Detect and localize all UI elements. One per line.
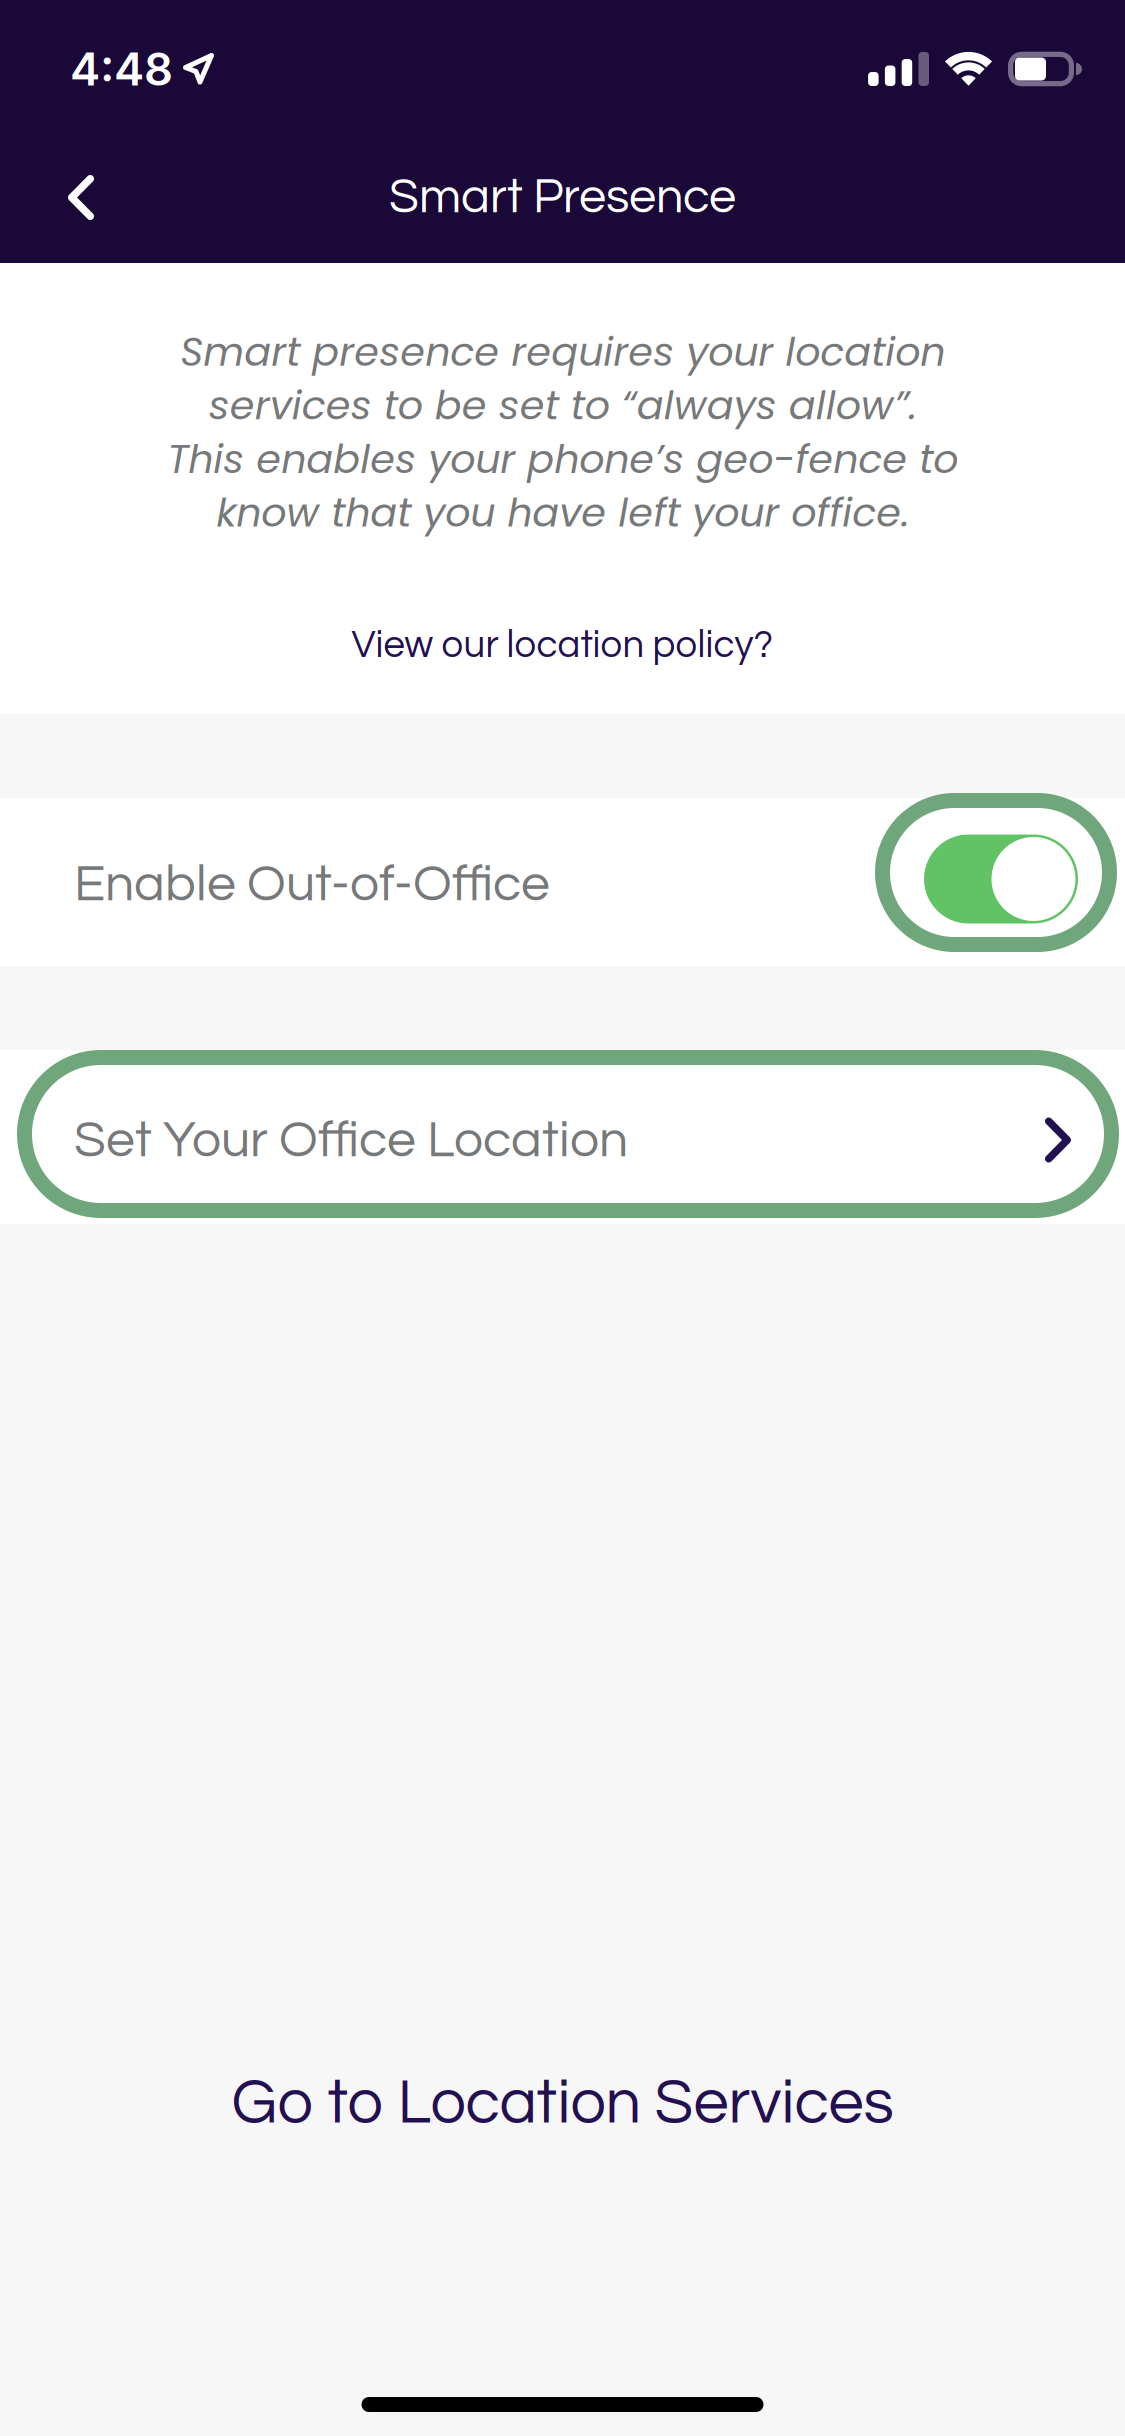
button[interactable]: Enable Out-of-Office: [0, 798, 1125, 966]
button[interactable]: Back: [26, 137, 136, 257]
button[interactable]: View our location policy?: [291, 599, 833, 691]
staticText: 4:48: [70, 42, 173, 96]
staticText: Smart presence requires your location se…: [167, 324, 958, 540]
button[interactable]: Set Your Office Location: [0, 1050, 1125, 1224]
staticText: View our location policy?: [351, 625, 773, 665]
staticText: Go to Location Services: [231, 2071, 893, 2136]
staticText: Enable Out-of-Office: [74, 858, 550, 911]
staticText: Set Your Office Location: [74, 1114, 628, 1167]
staticText: Smart Presence: [389, 172, 736, 222]
button[interactable]: Go to Location Services: [171, 2045, 953, 2162]
